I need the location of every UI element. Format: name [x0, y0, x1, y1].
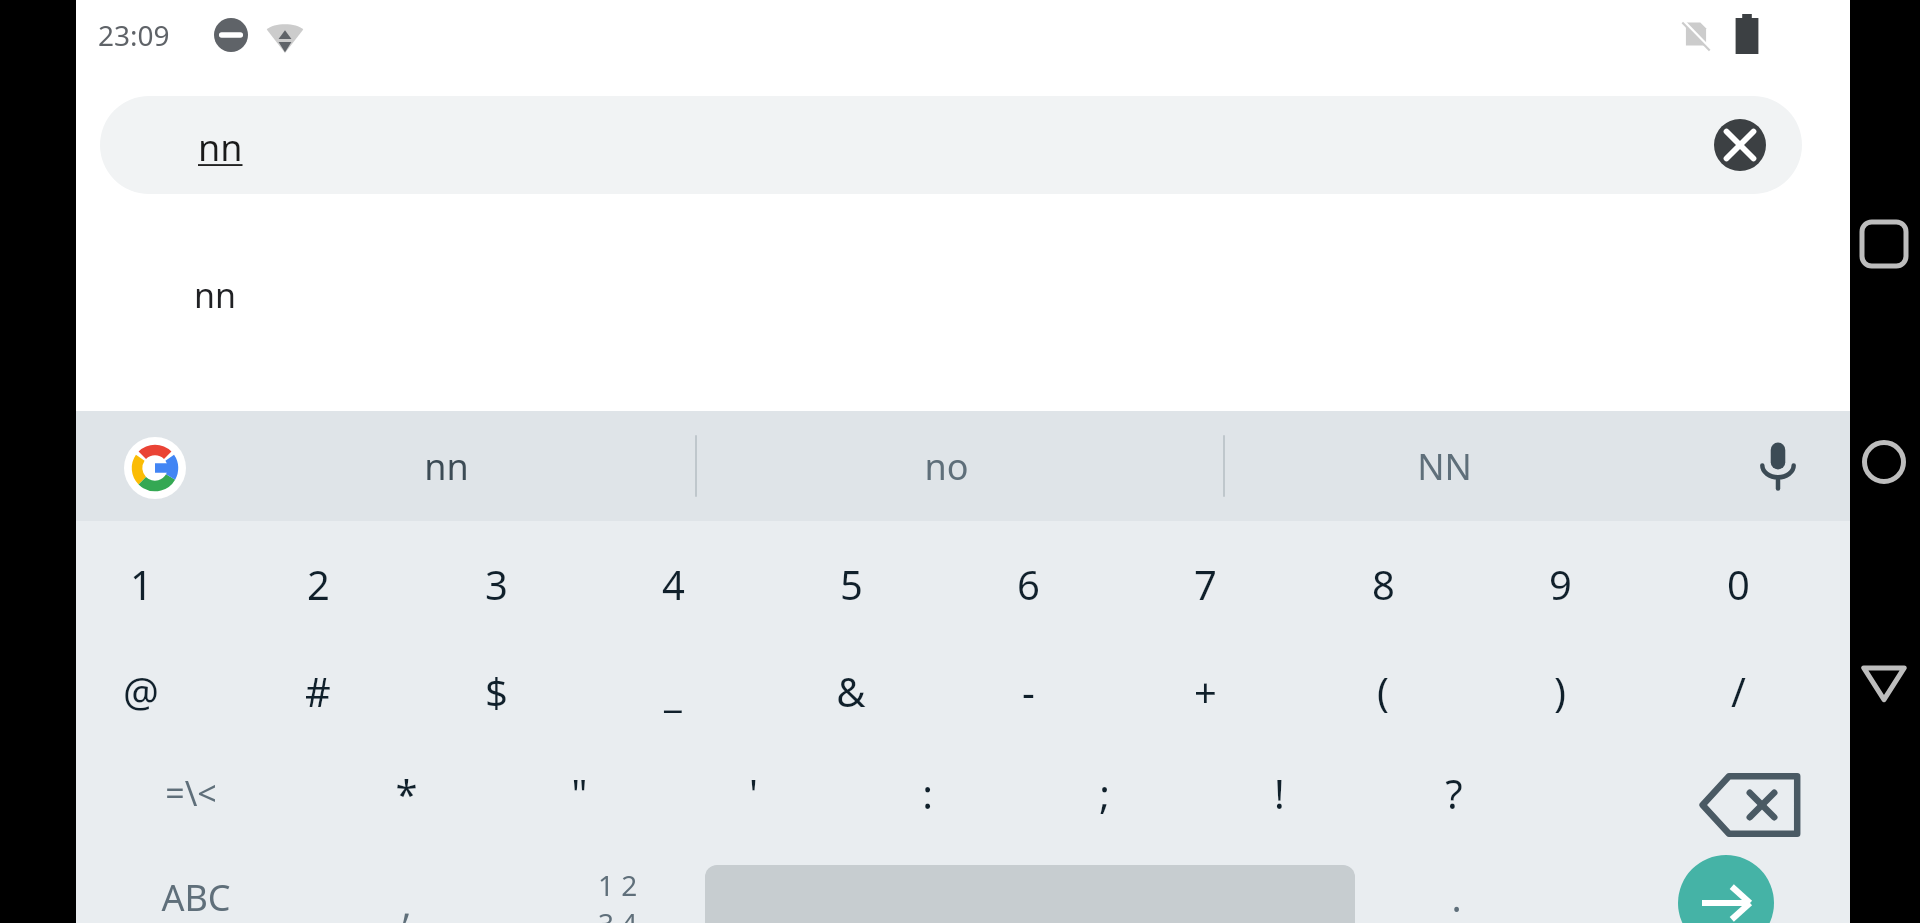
staticText: 9	[1549, 557, 1572, 611]
button[interactable]: #	[243, 653, 393, 729]
button[interactable]: ,	[331, 865, 481, 923]
button[interactable]: *	[331, 755, 481, 831]
button[interactable]: 9	[1485, 546, 1635, 622]
button[interactable]: Recents	[1862, 222, 1906, 266]
button[interactable]: Backspace	[1696, 769, 1806, 841]
staticText: 3 4	[598, 904, 638, 923]
button[interactable]: ;	[1029, 755, 1179, 831]
button[interactable]: @	[66, 653, 216, 729]
button[interactable]: Google	[124, 437, 186, 499]
staticText: nn	[198, 123, 243, 172]
staticText: @	[123, 664, 159, 718]
staticText: :	[922, 766, 933, 820]
button[interactable]: .	[1381, 859, 1531, 923]
button[interactable]: 1	[66, 546, 216, 622]
staticText: .	[1451, 871, 1462, 923]
staticText: $	[485, 664, 508, 718]
button[interactable]: $	[421, 653, 571, 729]
button[interactable]: )	[1485, 653, 1635, 729]
button[interactable]: _	[598, 653, 748, 729]
button[interactable]: Voice input	[1750, 437, 1806, 493]
button[interactable]: &	[776, 653, 926, 729]
staticText: +	[1194, 664, 1217, 718]
staticText: )	[1554, 664, 1566, 718]
button[interactable]: Back	[1862, 660, 1906, 704]
button[interactable]: !	[1204, 755, 1354, 831]
staticText: 0	[1727, 557, 1750, 611]
staticText: 5	[840, 557, 863, 611]
staticText: -	[1022, 664, 1035, 718]
button[interactable]: 6	[953, 546, 1103, 622]
staticText: 1	[130, 557, 153, 611]
button[interactable]: ABC	[121, 859, 271, 923]
staticText: (	[1377, 664, 1389, 718]
staticText: "	[571, 766, 588, 820]
staticText: ABC	[161, 873, 231, 922]
staticText: 2	[307, 557, 330, 611]
button[interactable]: no	[796, 411, 1096, 521]
staticText: 4	[662, 557, 685, 611]
button[interactable]: +	[1130, 653, 1280, 729]
button[interactable]: 4	[598, 546, 748, 622]
staticText: /	[1731, 664, 1746, 718]
button[interactable]: 2	[243, 546, 393, 622]
button[interactable]: '	[678, 755, 828, 831]
staticText: 6	[1017, 557, 1040, 611]
staticText: 23:09	[98, 16, 170, 54]
button[interactable]: nn	[296, 411, 596, 521]
button[interactable]: /	[1663, 653, 1813, 729]
staticText: 8	[1372, 557, 1395, 611]
button[interactable]: Home	[1862, 440, 1906, 484]
staticText: =\<	[165, 770, 217, 816]
button[interactable]: 0	[1663, 546, 1813, 622]
button[interactable]: NN	[1294, 411, 1594, 521]
staticText: #	[305, 664, 331, 718]
button[interactable]: Search	[1678, 855, 1774, 923]
staticText: *	[395, 766, 418, 820]
button[interactable]: (	[1308, 653, 1458, 729]
button[interactable]: Numbers	[574, 865, 662, 923]
button[interactable]: 5	[776, 546, 926, 622]
staticText: nn	[424, 442, 469, 491]
button[interactable]: ?	[1379, 755, 1529, 831]
button[interactable]: Clear text	[1714, 119, 1766, 171]
button[interactable]: -	[953, 653, 1103, 729]
button[interactable]: 8	[1308, 546, 1458, 622]
staticText: nn	[194, 272, 237, 318]
staticText: ?	[1445, 766, 1463, 820]
button[interactable]: 7	[1130, 546, 1280, 622]
staticText: ,	[401, 877, 412, 923]
staticText: ;	[1099, 766, 1110, 820]
staticText: &	[836, 664, 866, 718]
button[interactable]: 3	[421, 546, 571, 622]
staticText: NN	[1417, 442, 1472, 491]
button[interactable]: :	[852, 755, 1002, 831]
staticText: 1 2	[598, 866, 638, 904]
button[interactable]: nn	[100, 96, 1802, 194]
staticText: _	[664, 664, 682, 718]
staticText: !	[1274, 766, 1285, 820]
staticText: '	[749, 766, 758, 820]
button[interactable]: "	[504, 755, 654, 831]
staticText: 7	[1194, 557, 1217, 611]
button[interactable]: =\<	[116, 755, 266, 831]
button[interactable]: nn	[76, 240, 1850, 350]
staticText: 3	[485, 557, 508, 611]
staticText: no	[924, 442, 969, 491]
